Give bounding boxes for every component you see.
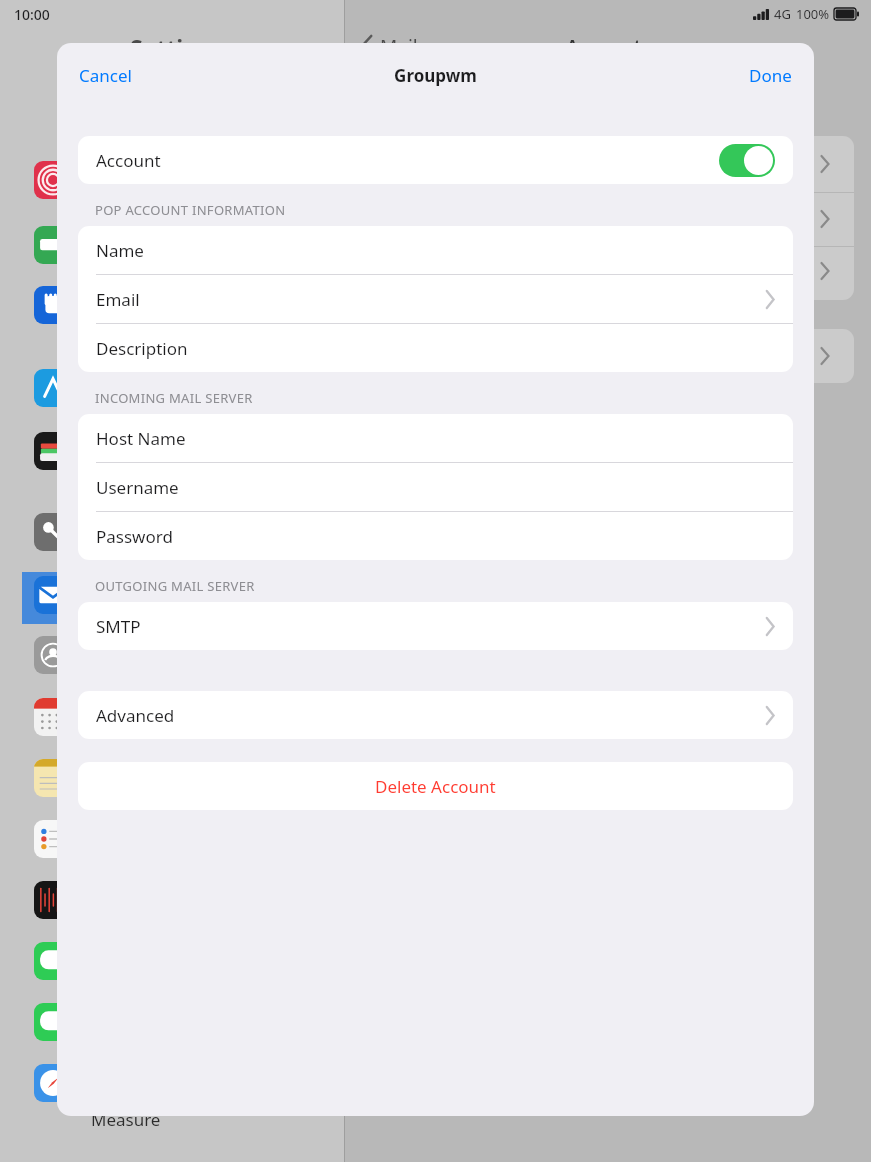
button[interactable]: Username [78,463,793,512]
staticText: Measure [91,1108,161,1131]
staticText: Password [96,525,775,548]
staticText: 10:00 [14,5,50,24]
button[interactable]: Password [78,512,793,560]
button[interactable]: Advanced [78,691,793,739]
staticText: Account [96,149,719,172]
staticText: Groupwm [394,64,477,87]
button[interactable]: Name [78,226,793,275]
button[interactable] [22,755,322,807]
button[interactable] [22,365,322,417]
button[interactable] [22,816,322,868]
staticText: OUTGOING MAIL SERVER [95,577,255,595]
button[interactable] [22,938,322,990]
button[interactable]: Cancel [57,56,154,95]
staticText: Cancel [79,64,132,87]
button[interactable]: Account [78,136,793,184]
button[interactable] [22,509,322,561]
button[interactable] [22,694,322,746]
staticText: Accounts [566,34,651,60]
staticText: 100% [796,5,830,23]
button[interactable] [22,999,322,1051]
staticText: SMTP [96,615,765,638]
button[interactable]: Delete Account [78,762,793,810]
button[interactable]: Host Name [78,414,793,463]
staticText: Username [96,476,775,499]
staticText: Mail [380,34,418,60]
staticText: Email [96,288,765,311]
staticText: Done [749,64,792,87]
button[interactable] [22,282,322,334]
staticText: Host Name [96,427,775,450]
button[interactable] [22,572,322,624]
staticText: POP ACCOUNT INFORMATION [95,201,286,219]
button[interactable] [22,632,322,684]
button[interactable] [22,222,322,274]
button[interactable]: SMTP [78,602,793,650]
staticText: 4G [774,5,791,23]
staticText: Name [96,239,775,262]
staticText: INCOMING MAIL SERVER [95,389,253,407]
button[interactable]: Email [78,275,793,324]
button[interactable]: Account enabled [719,144,775,177]
button[interactable] [22,877,322,929]
button[interactable] [22,1060,322,1112]
staticText: Settings [130,32,225,63]
staticText: Description [96,337,775,360]
staticText: Advanced [96,704,765,727]
button[interactable] [22,428,322,480]
staticText: Delete Account [375,775,496,798]
button[interactable]: Description [78,324,793,372]
button[interactable] [22,157,322,209]
button[interactable]: Done [727,56,814,95]
